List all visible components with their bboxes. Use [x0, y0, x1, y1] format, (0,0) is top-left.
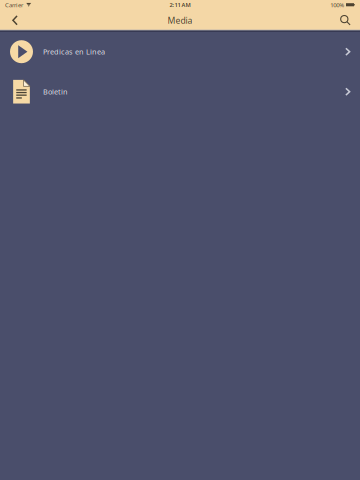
staticText: 100%	[330, 1, 344, 9]
button[interactable]: Boletin	[0, 72, 360, 112]
staticText: 2:11 AM	[169, 1, 190, 9]
button[interactable]: Search	[334, 11, 356, 30]
staticText: Media	[167, 14, 192, 26]
button[interactable]: Predicas en Linea	[0, 32, 360, 72]
staticText: Carrier	[5, 1, 23, 9]
staticText: Boletin	[43, 87, 68, 97]
staticText: Predicas en Linea	[43, 47, 105, 57]
button[interactable]: Back	[3, 11, 27, 30]
